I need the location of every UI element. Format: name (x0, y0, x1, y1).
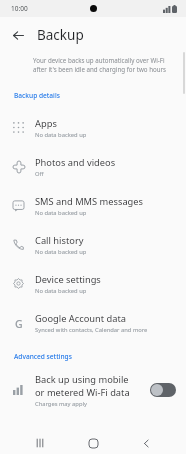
staticText: No data backed up (35, 287, 87, 295)
staticText: Advanced settings (14, 352, 72, 361)
button[interactable]: Home (80, 432, 106, 454)
staticText: Call history (35, 234, 84, 247)
staticText: 10:00 (11, 4, 28, 13)
button[interactable]: Back (7, 24, 29, 46)
staticText: Your device backs up automatically over … (33, 56, 167, 74)
button[interactable]: G (0, 303, 186, 342)
staticText: No data backed up (35, 209, 87, 217)
staticText: Back up using mobile or metered Wi-Fi da… (35, 373, 130, 399)
staticText: Backup (37, 26, 84, 44)
button[interactable]: Back (133, 432, 159, 454)
button[interactable]: SMS and MMS messages (0, 186, 186, 225)
staticText: SMS and MMS messages (35, 195, 144, 208)
staticText: Backup details (14, 91, 60, 100)
button[interactable]: Recent apps (27, 432, 53, 454)
button[interactable]: Call history (0, 225, 186, 264)
staticText: Synced with contacts, Calendar and more (35, 326, 148, 334)
staticText: Off (35, 170, 44, 178)
staticText: Device settings (35, 273, 101, 286)
staticText: Charges may apply (35, 400, 87, 408)
button[interactable]: Apps (0, 108, 186, 147)
staticText: No data backed up (35, 248, 87, 256)
staticText: Google Account data (35, 312, 127, 325)
button[interactable]: Back up using mobile or metered Wi-Fi da… (0, 366, 186, 414)
staticText: No data backed up (35, 131, 87, 139)
staticText: Apps (35, 117, 57, 130)
button[interactable]: Photos and videos (0, 147, 186, 186)
staticText: G (15, 317, 23, 329)
staticText: Photos and videos (35, 156, 116, 169)
button[interactable]: Device settings (0, 264, 186, 303)
